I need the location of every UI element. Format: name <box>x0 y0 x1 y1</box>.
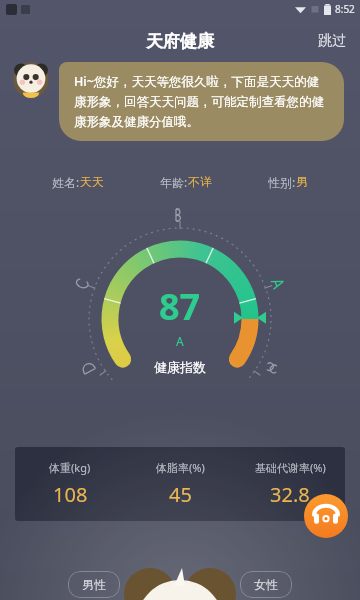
staticText: 8:52 <box>335 2 355 16</box>
staticText: 女性 <box>254 577 278 592</box>
staticText: 108 <box>53 481 88 508</box>
staticText: 45 <box>169 481 192 508</box>
button[interactable]: 女性 <box>240 571 292 598</box>
staticText: 32.8 <box>270 481 310 508</box>
button[interactable]: Customer service <box>304 494 348 538</box>
staticText: 体重(kg) <box>49 460 91 475</box>
button[interactable]: 跳过 <box>304 24 360 58</box>
staticText: 天府健康 <box>146 31 214 52</box>
button[interactable]: 男性 <box>68 571 120 598</box>
staticText: 男 <box>296 174 308 189</box>
staticText: 男性 <box>82 577 106 592</box>
staticText: 不详 <box>188 174 212 189</box>
staticText: 年龄: <box>160 174 188 190</box>
staticText: 天天 <box>80 174 104 189</box>
staticText: 跳过 <box>318 32 346 50</box>
staticText: 姓名: <box>52 174 80 190</box>
staticText: 健康指数 <box>154 359 206 375</box>
staticText: 性别: <box>268 174 296 190</box>
staticText: Hi~您好，天天等您很久啦，下面是天天的健康形象，回答天天问题，可能定制查看您的… <box>74 73 329 130</box>
staticText: 87 <box>159 282 201 331</box>
staticText: 体脂率(%) <box>156 460 205 475</box>
button[interactable]: Hi~您好，天天等您很久啦，下面是天天的健康形象，回答天天问题，可能定制查看您的… <box>59 62 344 141</box>
staticText: 基础代谢率(%) <box>255 460 326 475</box>
button[interactable]: 体重(kg) <box>15 447 345 521</box>
staticText: A <box>176 333 184 349</box>
